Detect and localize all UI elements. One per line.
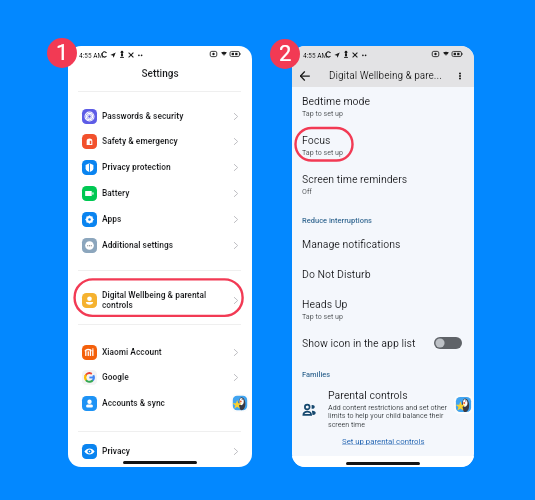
staticText: Battery bbox=[102, 188, 130, 198]
staticText: 4:55 AM bbox=[303, 52, 327, 60]
button[interactable]: Additional settings bbox=[68, 232, 252, 258]
staticText: Tap to set up bbox=[302, 312, 343, 320]
staticText: Additional settings bbox=[102, 240, 174, 250]
staticText: Safety & emergency bbox=[102, 136, 178, 146]
button[interactable]: Show icon in the app list bbox=[292, 331, 474, 355]
staticText: Apps bbox=[102, 214, 122, 224]
staticText: Heads Up bbox=[302, 298, 348, 310]
staticText: Manage notifications bbox=[302, 238, 401, 250]
staticText: Reduce interruptions bbox=[302, 216, 372, 225]
button[interactable]: Accounts & sync bbox=[68, 390, 252, 416]
staticText: Privacy protection bbox=[102, 162, 171, 172]
staticText: Families bbox=[302, 370, 331, 379]
staticText: Settings bbox=[68, 68, 252, 80]
button[interactable]: Heads Up bbox=[292, 293, 474, 322]
staticText: Google bbox=[102, 372, 129, 382]
button[interactable]: Privacy protection bbox=[68, 154, 252, 180]
staticText: Tap to set up bbox=[302, 109, 343, 117]
staticText: Xiaomi Account bbox=[102, 347, 162, 357]
staticText: Bedtime mode bbox=[302, 95, 371, 107]
staticText: Focus bbox=[302, 134, 331, 146]
staticText: Tap to set up bbox=[302, 148, 343, 156]
button[interactable]: Battery bbox=[68, 180, 252, 206]
button[interactable]: Parental controls bbox=[292, 384, 474, 432]
staticText: 4:55 AM bbox=[79, 52, 103, 60]
button[interactable]: Bedtime mode bbox=[292, 90, 474, 119]
staticText: Do Not Disturb bbox=[302, 268, 371, 280]
button[interactable]: Passwords & security bbox=[68, 103, 252, 129]
button[interactable]: Do Not Disturb bbox=[292, 263, 474, 285]
button[interactable]: More options bbox=[454, 70, 466, 82]
button[interactable]: Google bbox=[68, 364, 252, 390]
button[interactable]: Focus bbox=[292, 129, 474, 158]
staticText: Parental controls bbox=[328, 389, 408, 401]
staticText: 2 bbox=[279, 41, 292, 67]
staticText: Passwords & security bbox=[102, 111, 184, 121]
button[interactable]: Manage notifications bbox=[292, 233, 474, 255]
staticText: 1 bbox=[56, 40, 69, 66]
staticText: Add content restrictions and set other l… bbox=[328, 403, 447, 429]
staticText: Screen time reminders bbox=[302, 173, 408, 185]
button[interactable]: Privacy bbox=[68, 438, 252, 464]
button[interactable]: Xiaomi Account bbox=[68, 339, 252, 365]
staticText: Digital Wellbeing & parental controls bbox=[102, 290, 207, 310]
staticText: Off bbox=[302, 187, 312, 195]
button[interactable]: Set up parental controls bbox=[342, 437, 425, 446]
button[interactable]: Back bbox=[300, 70, 310, 82]
button[interactable]: Apps bbox=[68, 206, 252, 232]
staticText: Set up parental controls bbox=[342, 437, 425, 446]
button[interactable]: Digital Wellbeing & parental controls bbox=[68, 287, 252, 313]
staticText: Accounts & sync bbox=[102, 398, 165, 408]
staticText: Show icon in the app list bbox=[302, 337, 416, 349]
button[interactable]: Screen time reminders bbox=[292, 168, 474, 197]
staticText: Privacy bbox=[102, 446, 130, 456]
button[interactable]: Safety & emergency bbox=[68, 128, 252, 154]
staticText: Digital Wellbeing & pare... bbox=[329, 70, 442, 82]
